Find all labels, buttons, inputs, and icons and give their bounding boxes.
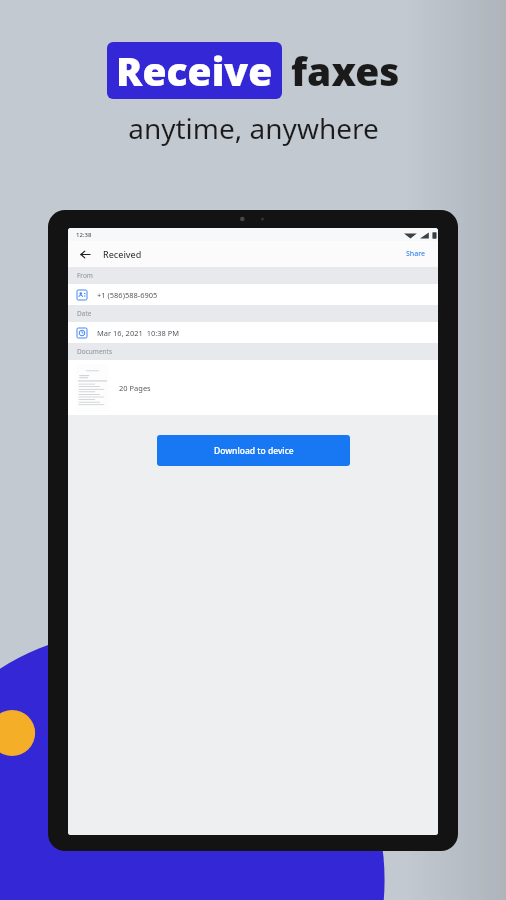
staticText: 12:38 bbox=[76, 231, 92, 239]
button[interactable]: Download to device bbox=[157, 435, 350, 466]
button[interactable]: Share bbox=[403, 246, 429, 262]
button[interactable]: +1 (586)588-6905 bbox=[68, 284, 438, 305]
staticText: anytime, anywhere bbox=[128, 109, 379, 147]
staticText: Download to device bbox=[214, 445, 294, 457]
staticText: Share bbox=[406, 249, 426, 259]
staticText: Documents bbox=[77, 347, 113, 356]
staticText: Date bbox=[77, 309, 92, 318]
staticText: Receive bbox=[116, 44, 273, 97]
staticText: faxes bbox=[291, 44, 400, 97]
staticText: Received bbox=[103, 248, 142, 260]
staticText: Mar 16, 2021 10:38 PM bbox=[97, 328, 180, 338]
button[interactable]: 20 Pages bbox=[68, 360, 438, 415]
button[interactable]: Mar 16, 2021 10:38 PM bbox=[68, 322, 438, 343]
staticText: From bbox=[77, 271, 93, 280]
button[interactable]: Back bbox=[77, 246, 93, 262]
staticText: 20 Pages bbox=[119, 383, 151, 393]
staticText: +1 (586)588-6905 bbox=[97, 290, 158, 300]
